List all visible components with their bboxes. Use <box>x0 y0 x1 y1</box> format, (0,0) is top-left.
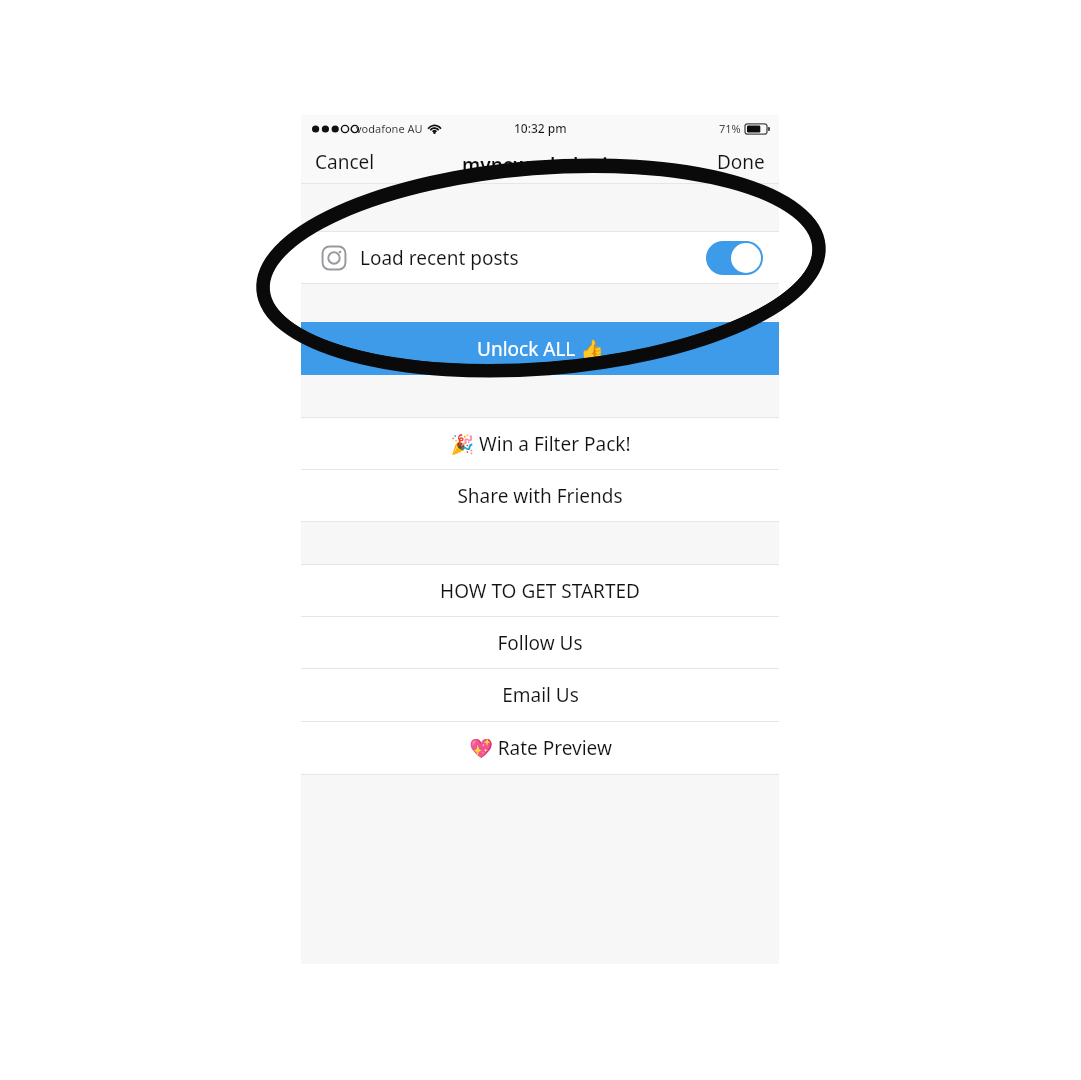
button[interactable]: Cancel <box>301 143 389 181</box>
staticText: 💖 Rate Preview <box>469 735 612 761</box>
staticText: Email Us <box>502 682 579 708</box>
staticText: 10:32 pm <box>514 120 567 136</box>
button[interactable]: 🎉 Win a Filter Pack! <box>301 418 779 469</box>
staticText: Done <box>717 149 765 175</box>
staticText: Share with Friends <box>457 483 623 509</box>
staticText: mynewcaledonia <box>462 152 619 178</box>
staticText: Load recent posts <box>360 245 519 271</box>
button[interactable]: Done <box>703 143 779 181</box>
staticText: Unlock ALL 👍 <box>477 336 604 362</box>
staticText: Follow Us <box>497 630 583 656</box>
button[interactable]: Load recent posts <box>301 232 779 283</box>
button[interactable]: Load recent posts toggle <box>706 241 763 275</box>
button[interactable]: 💖 Rate Preview <box>301 722 779 774</box>
button[interactable]: Email Us <box>301 669 779 721</box>
staticText: 🎉 Win a Filter Pack! <box>450 431 631 457</box>
staticText: Cancel <box>315 149 375 175</box>
button[interactable]: Share with Friends <box>301 470 779 521</box>
button[interactable]: Unlock ALL 👍 <box>301 322 779 375</box>
staticText: 71% <box>719 121 741 136</box>
staticText: HOW TO GET STARTED <box>440 578 640 604</box>
button[interactable]: Follow Us <box>301 617 779 668</box>
button[interactable]: HOW TO GET STARTED <box>301 565 779 616</box>
staticText: vodafone AU <box>356 121 423 136</box>
